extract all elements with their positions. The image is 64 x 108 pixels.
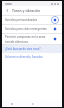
button[interactable]: Sonidos para citas emergentes [2, 25, 62, 33]
button[interactable]: Activar opción [51, 35, 59, 43]
staticText: Sonidos personalizados divididos [5, 18, 49, 22]
button[interactable]: Permitir campanas en la zona de [2, 34, 62, 44]
button[interactable]: Activar opción [51, 16, 59, 24]
staticText: ¿Está buscando otra cosa? [5, 47, 41, 51]
button[interactable]: Recientes [8, 100, 15, 107]
button[interactable]: Inicio [29, 100, 36, 107]
staticText: sonido silencioso [5, 40, 29, 44]
button[interactable]: Sonidos personalizados divididos [2, 16, 62, 24]
button[interactable]: Atrás [4, 7, 11, 14]
button[interactable]: Activar opción [51, 25, 59, 33]
staticText: Tonos y vibración [12, 8, 41, 13]
button[interactable]: Volumen multimedia, llamadas [2, 53, 62, 61]
staticText: Volumen multimedia, llamadas [5, 55, 43, 59]
staticText: Sonidos para citas emergentes [5, 27, 47, 31]
button[interactable]: ¿Está buscando otra cosa? [2, 45, 62, 53]
staticText: Permitir campanas en la zona de [5, 35, 49, 39]
